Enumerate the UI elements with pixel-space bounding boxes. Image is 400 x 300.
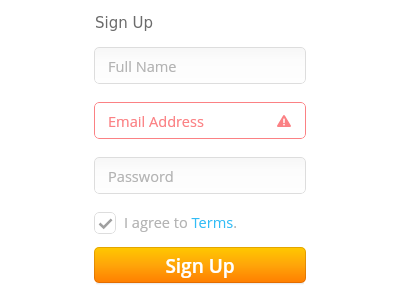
- other: Invalid email address: [277, 115, 291, 127]
- staticText: Email Address: [108, 111, 204, 131]
- button[interactable]: Sign Up: [94, 247, 306, 283]
- other: I agree to terms checkbox: [94, 212, 116, 234]
- staticText: I agree to Terms.: [124, 212, 238, 232]
- staticText: Password: [108, 166, 174, 186]
- staticText: Sign Up: [95, 14, 153, 31]
- button[interactable]: Full Name: [94, 47, 306, 84]
- button[interactable]: I agree to terms checkbox: [94, 212, 238, 234]
- button[interactable]: Email Address: [94, 102, 306, 139]
- button[interactable]: Password: [94, 157, 306, 194]
- staticText: Full Name: [108, 56, 177, 76]
- staticText: Sign Up: [165, 253, 235, 279]
